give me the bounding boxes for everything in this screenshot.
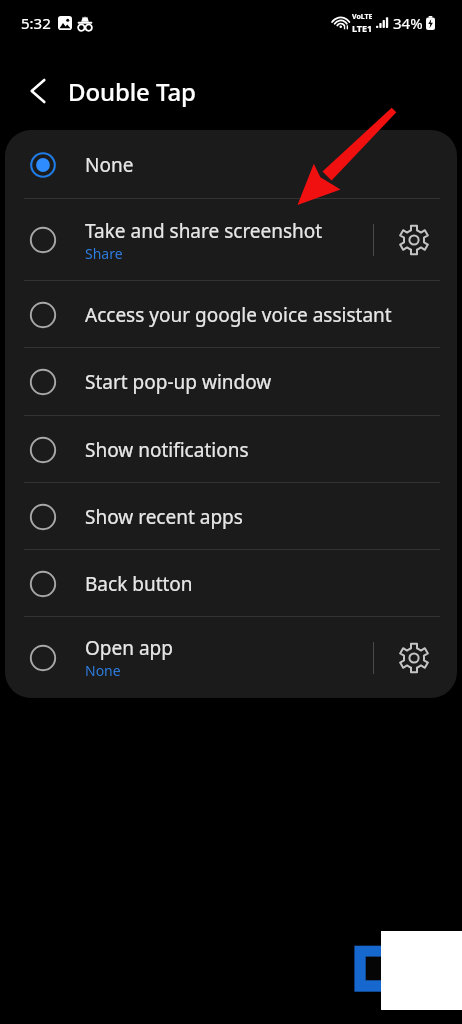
- button[interactable]: Show recent apps: [5, 483, 457, 550]
- button[interactable]: Back button: [5, 550, 457, 617]
- staticText: Show notifications: [85, 437, 249, 463]
- staticText: Share: [85, 244, 123, 263]
- staticText: Open app: [85, 635, 173, 661]
- button[interactable]: Show notifications: [5, 416, 457, 483]
- button[interactable]: Navigate up: [0, 52, 68, 130]
- staticText: None: [85, 152, 134, 178]
- staticText: Take and share screenshot: [85, 218, 323, 244]
- button[interactable]: Settings: [374, 617, 457, 698]
- staticText: Back button: [85, 571, 193, 597]
- staticText: Double Tap: [68, 75, 196, 108]
- staticText: LTE1: [352, 22, 373, 34]
- staticText: None: [85, 661, 121, 680]
- staticText: 5:32: [21, 13, 51, 33]
- button[interactable]: None: [5, 130, 457, 199]
- button[interactable]: Start pop-up window: [5, 348, 457, 416]
- button[interactable]: Settings: [374, 199, 457, 281]
- button[interactable]: Open app: [5, 617, 457, 698]
- staticText: VoLTE: [352, 12, 373, 22]
- staticText: Show recent apps: [85, 504, 243, 530]
- staticText: Access your google voice assistant: [85, 302, 392, 328]
- staticText: 34%: [393, 13, 423, 33]
- staticText: Start pop-up window: [85, 369, 272, 395]
- button[interactable]: Take and share screenshot: [5, 199, 457, 281]
- button[interactable]: Access your google voice assistant: [5, 281, 457, 348]
